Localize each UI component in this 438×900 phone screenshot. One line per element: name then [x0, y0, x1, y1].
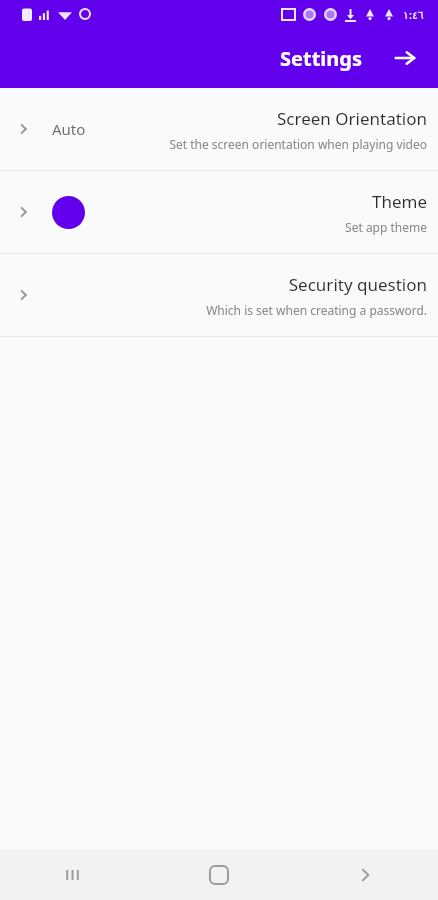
button[interactable]: Auto: [0, 88, 438, 170]
staticText: Settings: [280, 45, 362, 72]
staticText: Screen Orientation: [276, 107, 427, 130]
staticText: Which is set when creating a password.: [206, 302, 427, 318]
button[interactable]: Security question: [0, 254, 438, 336]
staticText: Auto: [52, 119, 86, 139]
button[interactable]: Theme: [0, 171, 438, 253]
staticText: Theme: [371, 190, 427, 213]
staticText: ١:٤٦: [403, 7, 424, 22]
button[interactable]: Home: [146, 850, 292, 900]
staticText: Security question: [288, 273, 427, 296]
staticText: Set the screen orientation when playing …: [169, 136, 427, 152]
button[interactable]: Recents: [0, 850, 146, 900]
button[interactable]: Forward: [388, 41, 422, 75]
button[interactable]: Back: [292, 850, 438, 900]
staticText: Set app theme: [345, 219, 427, 235]
